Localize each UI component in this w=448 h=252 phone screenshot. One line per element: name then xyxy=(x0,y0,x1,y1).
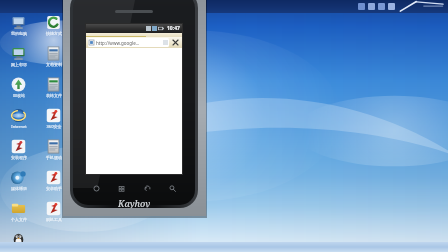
staticText: 文档资料 xyxy=(38,62,70,67)
staticText: Internet xyxy=(3,124,35,129)
button[interactable]: Toolbar button xyxy=(358,3,365,10)
staticText: 个人文件 xyxy=(3,217,35,222)
button[interactable]: Search xyxy=(161,182,183,194)
button[interactable]: Toolbar button xyxy=(378,3,385,10)
button[interactable]: 网上邻居 xyxy=(2,46,35,77)
staticText: 360安全 xyxy=(38,124,70,129)
button[interactable]: 快捷方式 xyxy=(37,15,70,46)
button[interactable]: 文档资料 xyxy=(37,46,70,77)
button[interactable]: Menu xyxy=(110,182,132,194)
button[interactable]: 我的电脑 xyxy=(2,15,35,46)
button[interactable]: 媒体播放 xyxy=(2,170,35,201)
button[interactable]: Back xyxy=(136,182,158,194)
button[interactable]: Toolbar button xyxy=(368,3,375,10)
button[interactable]: 回收站 xyxy=(2,77,35,108)
staticText: 安装程序 xyxy=(3,155,35,160)
staticText: 安卓助手 xyxy=(38,186,70,191)
staticText: 网上邻居 xyxy=(3,62,35,67)
button[interactable]: Home xyxy=(85,182,107,194)
staticText: 回收站 xyxy=(3,93,35,98)
staticText: 我的电脑 xyxy=(3,31,35,36)
staticText: 10:47 xyxy=(167,25,180,32)
button[interactable]: Internet xyxy=(2,108,35,139)
button[interactable]: Toolbar button xyxy=(388,3,395,10)
button[interactable]: QQ xyxy=(2,232,35,252)
button[interactable]: 安卓助手 xyxy=(37,170,70,201)
button[interactable]: Stop loading xyxy=(171,38,180,47)
button[interactable]: 360安全 xyxy=(37,108,70,139)
staticText: QQ xyxy=(3,248,35,252)
button[interactable]: 安装程序 xyxy=(2,139,35,170)
staticText: 表格文件 xyxy=(38,93,70,98)
button[interactable]: 个人文件 xyxy=(2,201,35,232)
button[interactable]: 表格文件 xyxy=(37,77,70,108)
staticText: 快捷方式 xyxy=(38,31,70,36)
staticText: 刷机工具 xyxy=(38,217,70,222)
button[interactable]: http://www.google... xyxy=(89,38,168,47)
button[interactable]: 手机驱动 xyxy=(37,139,70,170)
button[interactable]: 刷机工具 xyxy=(37,201,70,232)
button[interactable]: Taskbar xyxy=(0,242,448,252)
staticText: 手机驱动 xyxy=(38,155,70,160)
staticText: Kayhov xyxy=(118,197,151,208)
staticText: 媒体播放 xyxy=(3,186,35,191)
staticText: http://www.google... xyxy=(96,40,140,46)
